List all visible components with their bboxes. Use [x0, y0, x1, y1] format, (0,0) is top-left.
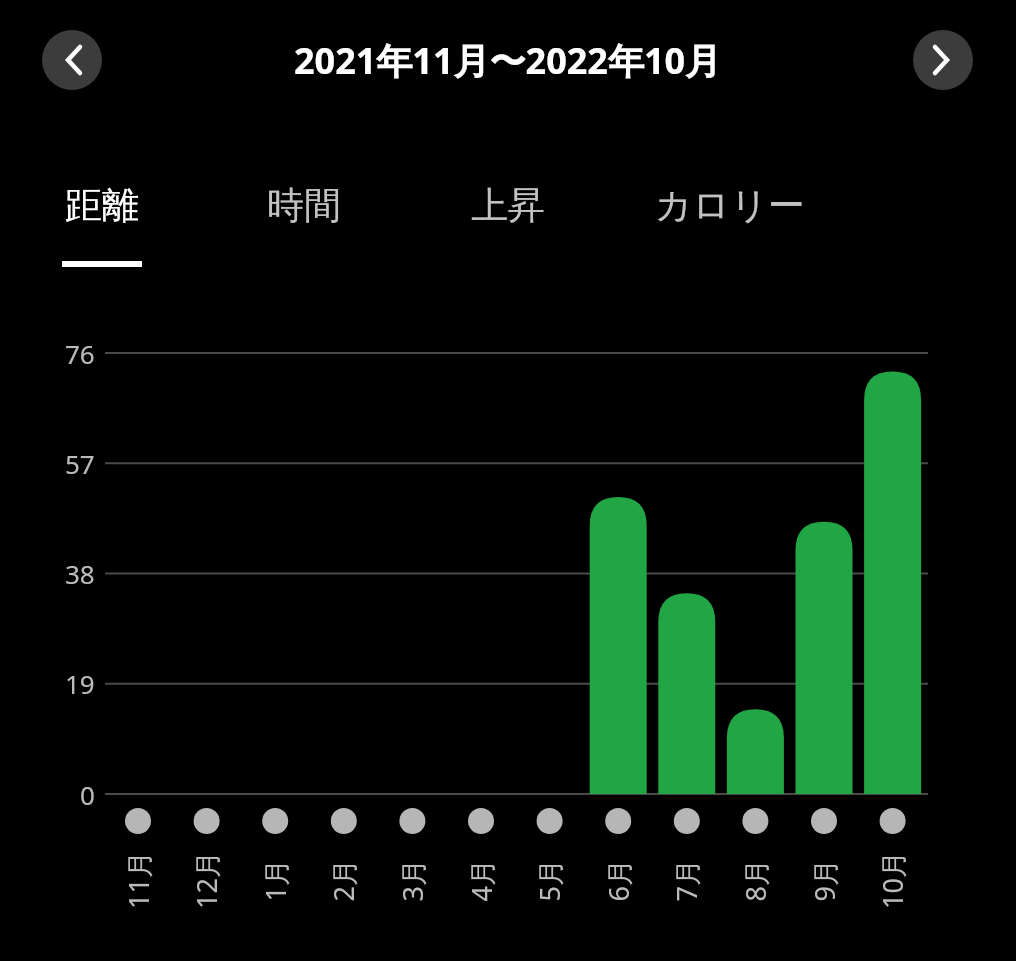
button[interactable]: 上昇 — [433, 165, 583, 270]
button[interactable]: Previous period — [42, 30, 102, 90]
button[interactable]: Next period — [913, 30, 973, 90]
button[interactable]: 時間 — [229, 165, 379, 270]
button[interactable]: 距離 — [27, 165, 177, 270]
button[interactable]: カロリー — [630, 165, 830, 270]
